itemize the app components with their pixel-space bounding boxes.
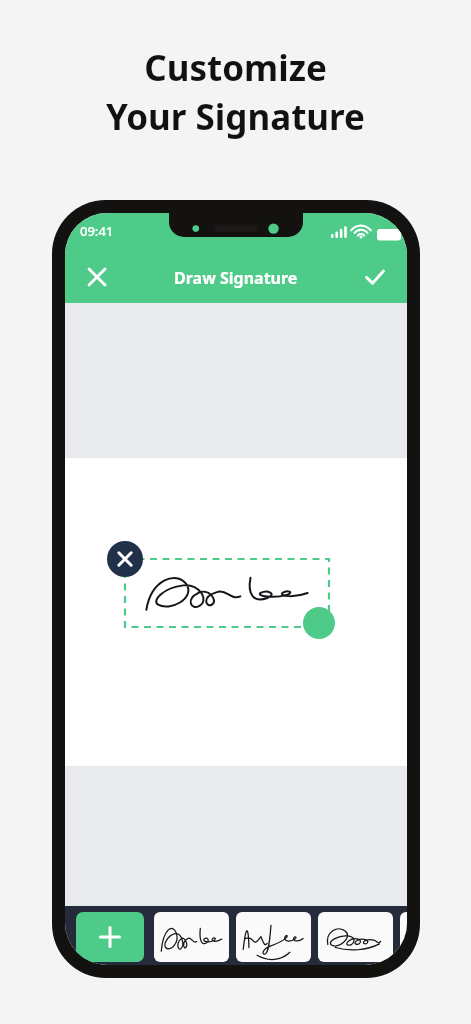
button[interactable]: Delete signature	[107, 541, 143, 577]
staticText: Draw Signature	[174, 267, 298, 289]
button[interactable]: Close	[73, 253, 121, 301]
staticText: 09:41	[80, 222, 114, 240]
button[interactable]: Saved signature 4	[400, 912, 407, 962]
button[interactable]: Add signature	[76, 912, 144, 962]
button[interactable]: Done	[351, 253, 399, 301]
button[interactable]: Saved signature 1	[154, 912, 229, 962]
button[interactable]: Saved signature 3	[318, 912, 393, 962]
button[interactable]: Resize	[303, 607, 335, 639]
staticText: Customize Your Signature	[106, 44, 365, 140]
button[interactable]: Saved signature 2	[236, 912, 311, 962]
